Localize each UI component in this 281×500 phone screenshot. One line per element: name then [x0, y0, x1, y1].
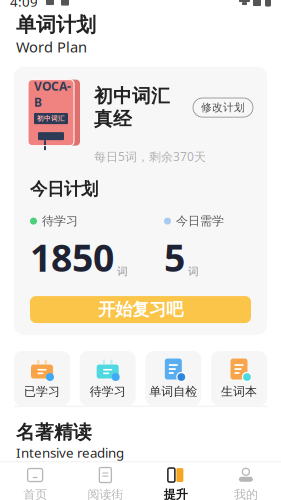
- staticText: 每日5词，剩余370天: [94, 148, 206, 164]
- button[interactable]: 开始复习吧: [30, 296, 251, 323]
- staticText: 初中词汇: [37, 114, 65, 123]
- staticText: 阅读街: [87, 487, 123, 500]
- staticText: 提升: [164, 487, 188, 500]
- staticText: 首页: [23, 487, 47, 500]
- staticText: 单词计划: [16, 13, 96, 37]
- staticText: 词: [117, 265, 128, 278]
- staticText: 已学习: [24, 384, 60, 399]
- staticText: Intensive reading: [16, 444, 124, 461]
- staticText: 4:09: [10, 0, 38, 10]
- button[interactable]: 提升: [140, 461, 211, 500]
- staticText: 词: [188, 265, 199, 278]
- staticText: 名著精读: [16, 421, 92, 444]
- button[interactable]: 修改计划: [193, 98, 253, 117]
- staticText: 待学习: [90, 384, 126, 399]
- staticText: 我的: [234, 487, 258, 500]
- button[interactable]: 待学习: [80, 351, 136, 406]
- staticText: VOCAB: [34, 78, 71, 110]
- button[interactable]: 生词本: [211, 351, 267, 406]
- button[interactable]: 已学习: [14, 351, 70, 406]
- staticText: 1850: [30, 232, 114, 282]
- staticText: 开始复习吧: [98, 299, 183, 320]
- button[interactable]: 单词自检: [145, 351, 201, 406]
- staticText: 修改计划: [201, 101, 245, 114]
- staticText: 待学习: [42, 214, 78, 228]
- button[interactable]: 阅读街: [70, 461, 140, 500]
- staticText: 单词自检: [149, 384, 197, 399]
- button[interactable]: 我的: [211, 461, 281, 500]
- staticText: 5: [164, 232, 185, 282]
- staticText: 生词本: [221, 384, 257, 399]
- staticText: 今日需学: [176, 214, 224, 228]
- staticText: 今日计划: [30, 178, 98, 200]
- staticText: 初中词汇真经: [94, 85, 170, 130]
- button[interactable]: 首页: [0, 461, 70, 500]
- staticText: Word Plan: [16, 37, 87, 57]
